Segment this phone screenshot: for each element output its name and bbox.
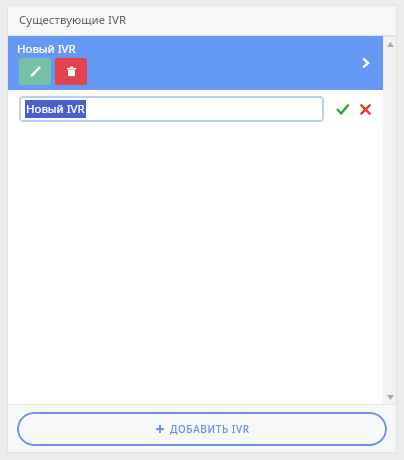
button[interactable]: Edit — [19, 58, 51, 85]
staticText: Новый IVR — [17, 41, 76, 57]
button[interactable]: ДОБАВИТЬ IVR — [17, 412, 387, 446]
button[interactable]: Новый IVR — [7, 36, 383, 90]
staticText: Существующие IVR — [19, 12, 127, 28]
button[interactable]: Scroll up — [383, 37, 397, 51]
staticText: ДОБАВИТЬ IVR — [170, 422, 250, 436]
button[interactable]: Delete — [55, 58, 87, 85]
button[interactable]: Open — [357, 54, 375, 72]
button[interactable]: Accept — [332, 99, 352, 119]
button[interactable]: Cancel — [355, 99, 375, 119]
button[interactable]: Новый IVR — [19, 96, 324, 122]
staticText: Новый IVR — [26, 101, 85, 117]
button[interactable]: Scroll down — [383, 390, 397, 404]
